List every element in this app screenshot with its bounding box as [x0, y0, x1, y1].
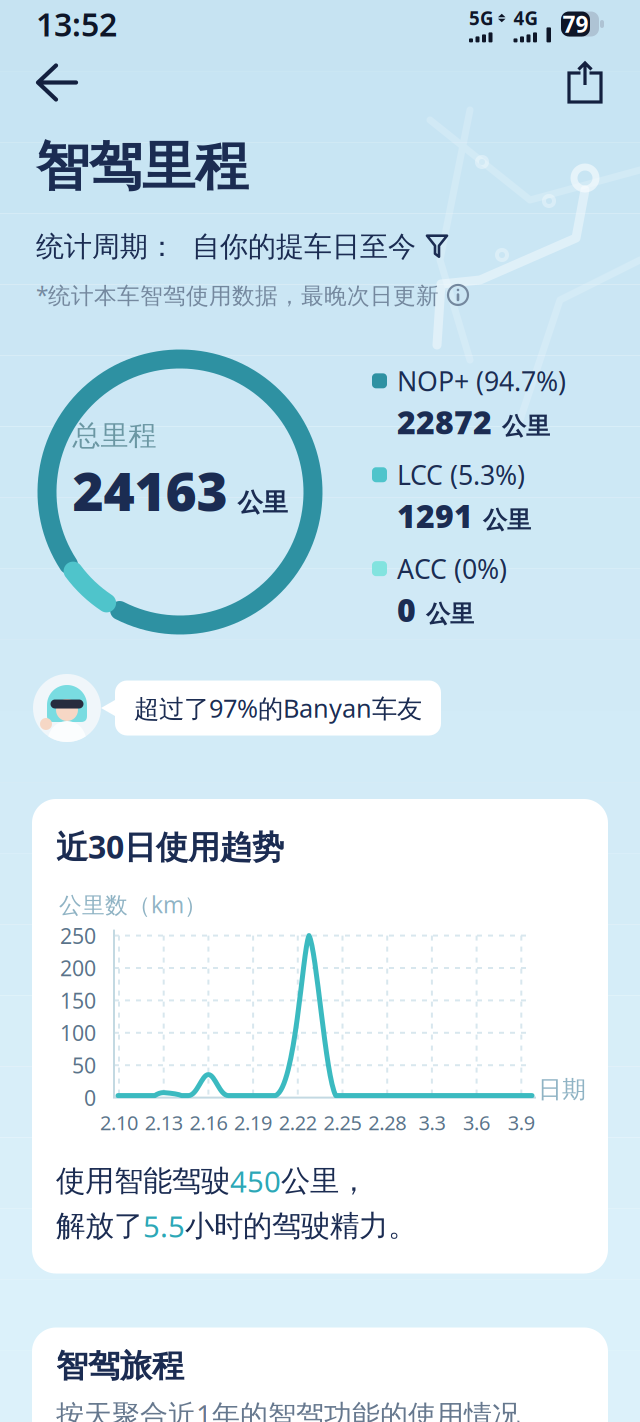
- staticText: 450: [230, 1162, 281, 1201]
- staticText: 智驾旅程: [56, 1346, 184, 1386]
- button[interactable]: 统计周期： 自你的提车日至今: [0, 229, 449, 264]
- staticText: 公里，: [281, 1163, 368, 1199]
- staticText: 100: [60, 1019, 96, 1047]
- staticText: 总里程: [72, 418, 156, 453]
- staticText: 小时的驾驶精力。: [185, 1208, 417, 1244]
- staticText: 公里: [426, 599, 474, 629]
- staticText: LCC (5.3%): [397, 457, 525, 492]
- staticText: 0: [397, 588, 416, 631]
- staticText: NOP+ (94.7%): [397, 363, 566, 398]
- staticText: ACC (0%): [397, 551, 507, 586]
- staticText: 日期: [538, 1075, 586, 1104]
- staticText: 近30日使用趋势: [56, 825, 284, 867]
- staticText: 200: [60, 954, 96, 982]
- staticText: 2.10: [100, 1109, 138, 1136]
- staticText: 2.22: [279, 1109, 317, 1136]
- staticText: 13:52: [36, 3, 117, 45]
- staticText: 公里: [483, 505, 531, 535]
- staticText: 4G: [513, 6, 538, 30]
- staticText: 5G: [469, 6, 494, 30]
- staticText: 公里数（km）: [59, 889, 207, 920]
- staticText: 1291: [397, 494, 473, 537]
- staticText: 公里: [237, 487, 287, 518]
- staticText: 150: [60, 986, 96, 1014]
- staticText: 250: [60, 921, 96, 950]
- staticText: 统计周期： 自你的提车日至今: [36, 229, 416, 264]
- button[interactable]: Back: [36, 60, 78, 104]
- staticText: 2.25: [323, 1109, 361, 1136]
- staticText: 使用智能驾驶: [56, 1163, 230, 1199]
- staticText: 超过了97%的Banyan车友: [134, 691, 422, 725]
- staticText: 5.5: [143, 1207, 185, 1246]
- staticText: 按天聚合近1年的智驾功能的使用情况: [56, 1396, 520, 1422]
- staticText: 2.19: [234, 1109, 272, 1136]
- staticText: 22872: [397, 401, 492, 443]
- staticText: 智驾里程: [36, 134, 248, 199]
- staticText: 24163: [72, 455, 227, 526]
- staticText: 3.9: [508, 1109, 535, 1136]
- staticText: *统计本车智驾使用数据，最晚次日更新: [36, 280, 439, 310]
- staticText: 3.3: [418, 1109, 445, 1136]
- staticText: 0: [84, 1083, 96, 1112]
- staticText: 50: [72, 1051, 96, 1079]
- staticText: 2.28: [368, 1109, 406, 1136]
- staticText: 公里: [502, 411, 550, 441]
- staticText: 79: [562, 9, 588, 39]
- staticText: 2.16: [189, 1109, 227, 1136]
- button[interactable]: Info: [447, 284, 469, 306]
- staticText: 2.13: [145, 1109, 183, 1136]
- staticText: 解放了: [56, 1208, 143, 1244]
- staticText: 3.6: [463, 1109, 490, 1136]
- button[interactable]: Share: [566, 60, 604, 105]
